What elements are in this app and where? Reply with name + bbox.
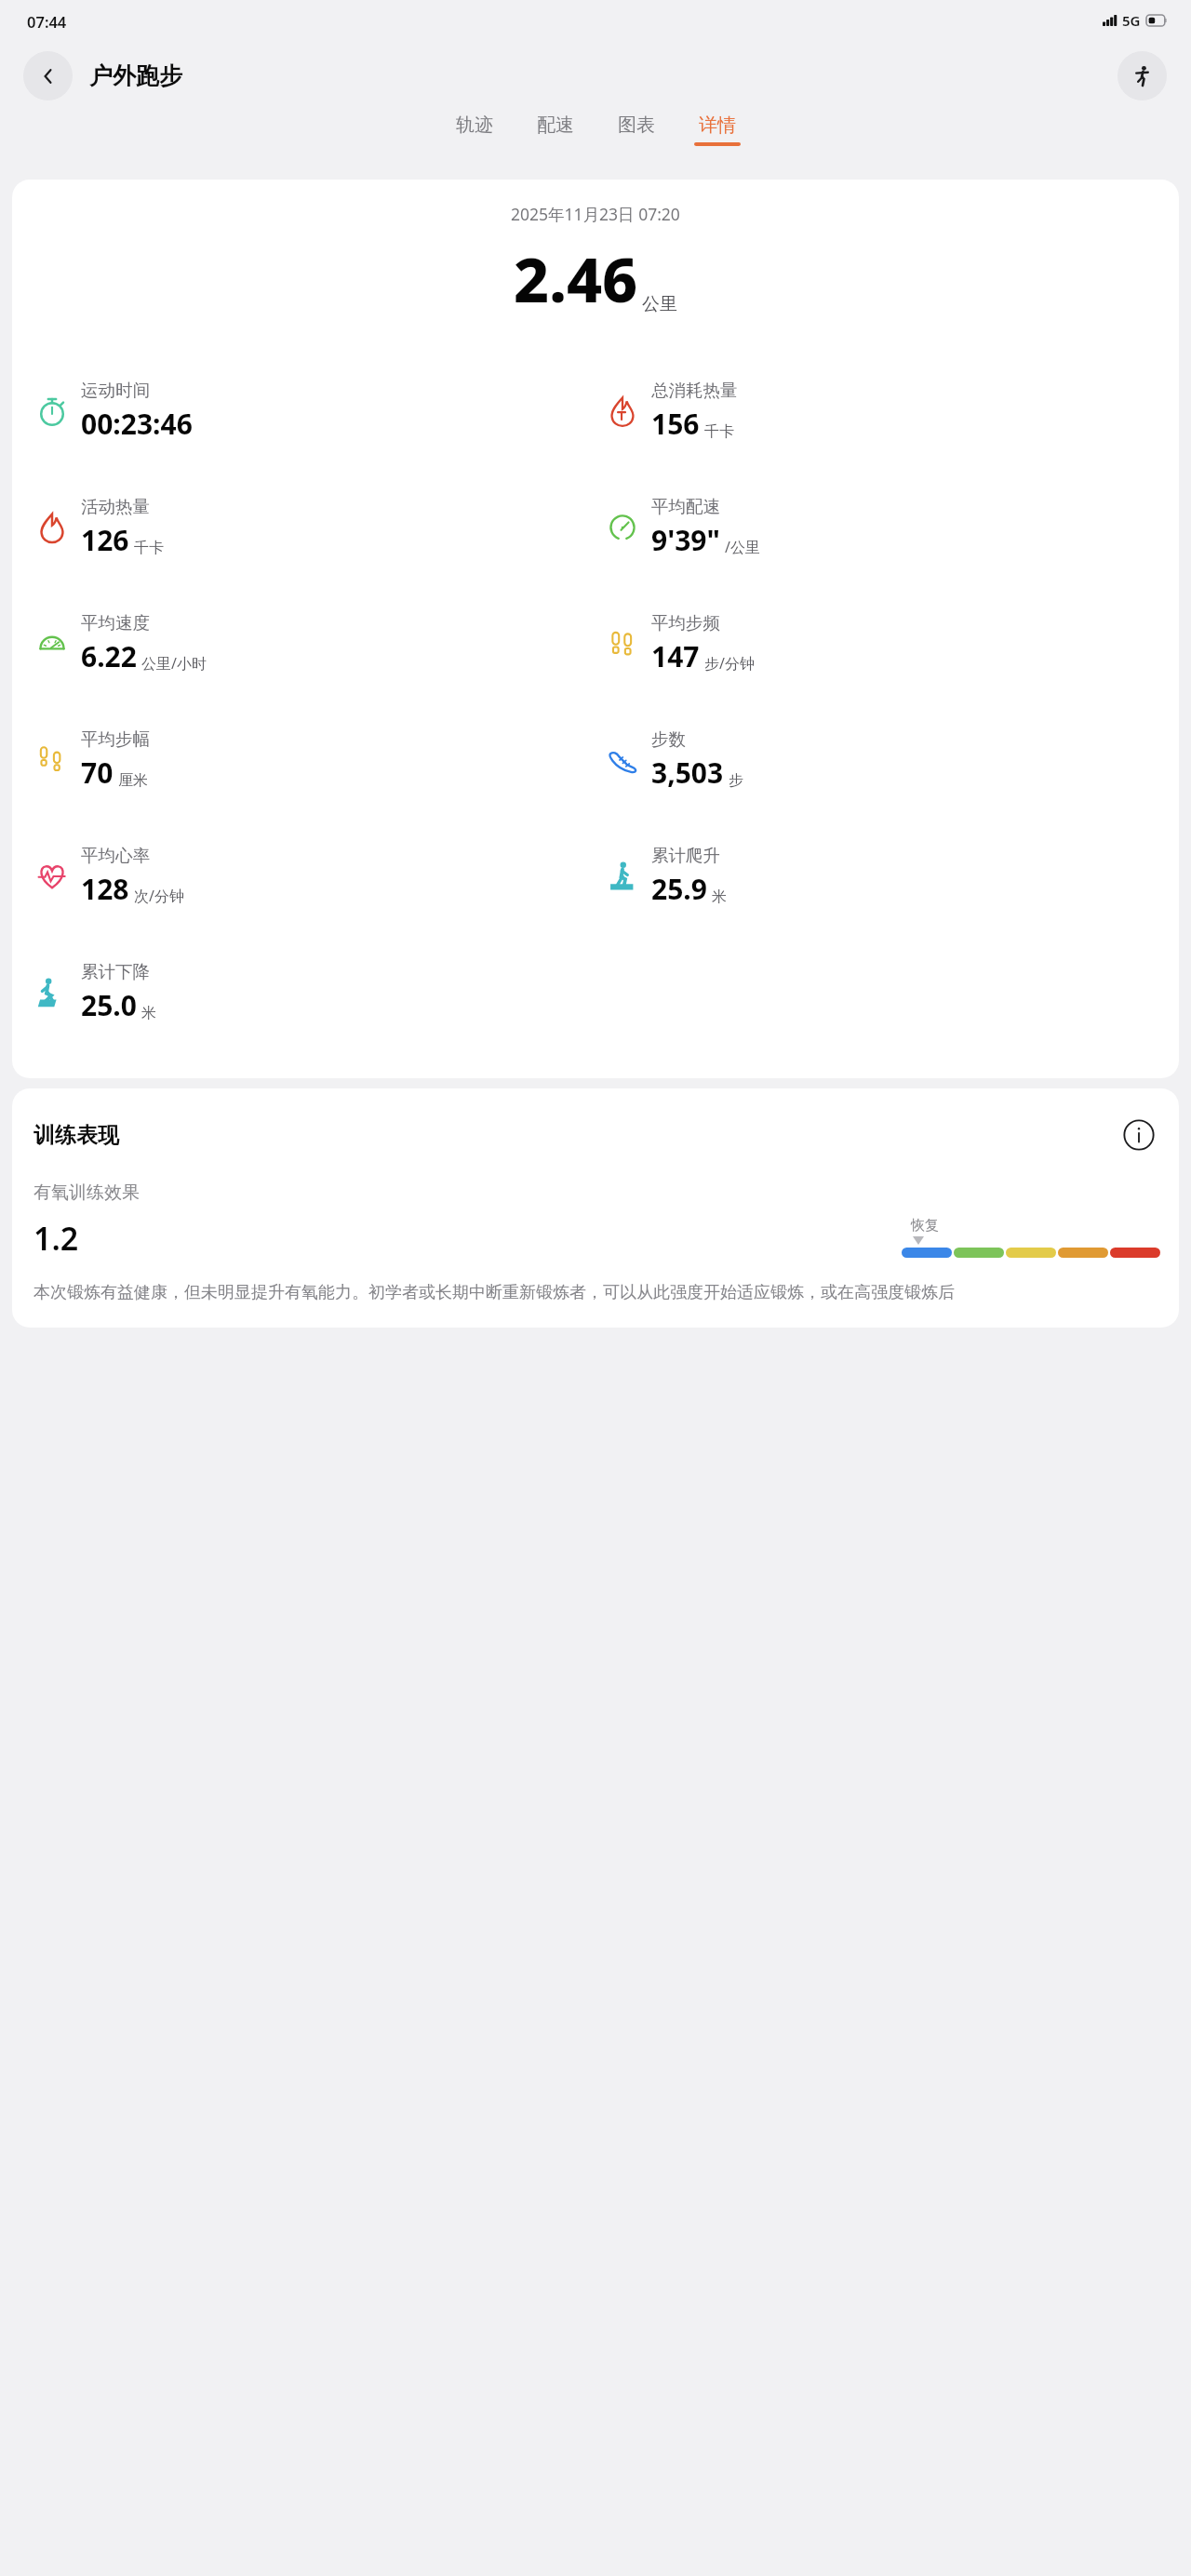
staticText: 平均步幅 [81,728,150,750]
staticText: 156 [651,405,700,443]
staticText: 25.9 [651,870,707,908]
button[interactable]: Info [1120,1116,1158,1154]
staticText: 活动热量 [81,496,150,517]
button[interactable]: 累计爬升 [595,818,1179,934]
button[interactable]: 配速 [529,113,582,146]
staticText: 126 [81,521,129,559]
button[interactable]: 累计下降 [12,934,595,1050]
button[interactable]: 步数 [595,701,1179,818]
staticText: 千卡 [134,539,164,557]
button[interactable]: 总消耗热量 [595,353,1179,469]
button[interactable]: 图表 [609,113,663,146]
staticText: 平均速度 [81,612,150,634]
staticText: 累计下降 [81,961,150,982]
staticText: 公里/小时 [141,653,207,674]
staticText: 米 [141,1004,156,1022]
staticText: 厘米 [118,771,148,790]
staticText: 米 [712,888,727,906]
button[interactable]: 平均速度 [12,585,595,701]
staticText: 总消耗热量 [651,380,738,401]
staticText: 2.46 [514,236,638,320]
staticText: 128 [81,870,129,908]
staticText: 户外跑步 [89,61,182,90]
staticText: 平均步频 [651,612,720,634]
staticText: 07:44 [27,11,67,32]
staticText: 运动时间 [81,380,150,401]
staticText: 次/分钟 [134,886,184,906]
staticText: 轨迹 [456,113,493,137]
staticText: 9'39" [651,521,720,559]
button[interactable]: 平均心率 [12,818,595,934]
staticText: 详情 [699,113,736,137]
staticText: 3,503 [651,754,724,792]
button[interactable]: Back [23,51,73,100]
staticText: 本次锻炼有益健康，但未明显提升有氧能力。初学者或长期中断重新锻炼者，可以从此强度… [33,1282,955,1303]
staticText: 25.0 [81,986,137,1024]
staticText: 累计爬升 [651,845,720,866]
staticText: 千卡 [704,422,734,441]
button[interactable]: Activity type [1117,51,1167,100]
staticText: 1.2 [33,1217,79,1260]
staticText: 平均配速 [651,496,720,517]
button[interactable]: 运动时间 [12,353,595,469]
staticText: 公里 [642,293,677,315]
staticText: 70 [81,754,114,792]
staticText: 147 [651,637,700,675]
staticText: 配速 [537,113,574,137]
staticText: 步数 [651,728,686,750]
button[interactable]: 详情 [690,113,744,146]
button[interactable]: 平均配速 [595,469,1179,585]
staticText: 5G [1122,11,1141,30]
button[interactable]: 平均步幅 [12,701,595,818]
staticText: 有氧训练效果 [33,1181,140,1204]
staticText: 步 [729,771,743,790]
button[interactable]: 平均步频 [595,585,1179,701]
staticText: 平均心率 [81,845,150,866]
staticText: /公里 [725,537,760,557]
staticText: 训练表现 [33,1122,119,1149]
staticText: 00:23:46 [81,405,193,443]
staticText: 2025年11月23日 07:20 [511,203,680,225]
staticText: 图表 [618,113,655,137]
staticText: 步/分钟 [704,653,755,674]
staticText: 恢复 [911,1217,939,1235]
button[interactable]: 活动热量 [12,469,595,585]
button[interactable]: 轨迹 [448,113,502,146]
staticText: 6.22 [81,637,137,675]
